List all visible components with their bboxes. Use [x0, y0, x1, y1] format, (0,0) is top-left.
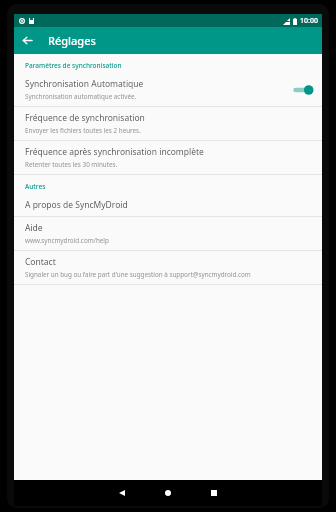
staticText: Aide: [25, 222, 43, 234]
button[interactable]: Synchronisation Automatique: [14, 73, 322, 106]
staticText: A propos de SyncMyDroid: [25, 199, 128, 211]
staticText: Paramètres de synchronisation: [25, 61, 122, 70]
button[interactable]: Back: [99, 480, 145, 506]
staticText: Synchronisation automatique activée.: [25, 92, 137, 101]
staticText: www.syncmydroid.com/help: [25, 236, 109, 245]
staticText: Signaler un bug ou faire part d'une sugg…: [25, 270, 251, 279]
button[interactable]: Aide: [14, 217, 322, 250]
button[interactable]: Back: [14, 27, 41, 54]
button[interactable]: Home: [145, 480, 191, 506]
staticText: Contact: [25, 256, 56, 268]
staticText: 10:00: [300, 16, 318, 26]
button[interactable]: A propos de SyncMyDroid: [14, 194, 322, 216]
staticText: Réglages: [48, 33, 96, 48]
staticText: Retenter toutes les 30 minutes.: [25, 160, 118, 169]
staticText: Envoyer les fichiers toutes les 2 heures…: [25, 126, 141, 135]
button[interactable]: Fréquence après synchronisation incomplè…: [14, 141, 322, 174]
button[interactable]: Fréquence de synchronisation: [14, 107, 322, 140]
staticText: Autres: [25, 182, 46, 191]
button[interactable]: Contact: [14, 251, 322, 284]
staticText: Fréquence après synchronisation incomplè…: [25, 146, 204, 158]
button[interactable]: Recent apps: [191, 480, 237, 506]
staticText: Synchronisation Automatique: [25, 78, 144, 90]
staticText: Fréquence de synchronisation: [25, 112, 145, 124]
button[interactable]: Automatic synchronisation toggle: [292, 84, 314, 96]
